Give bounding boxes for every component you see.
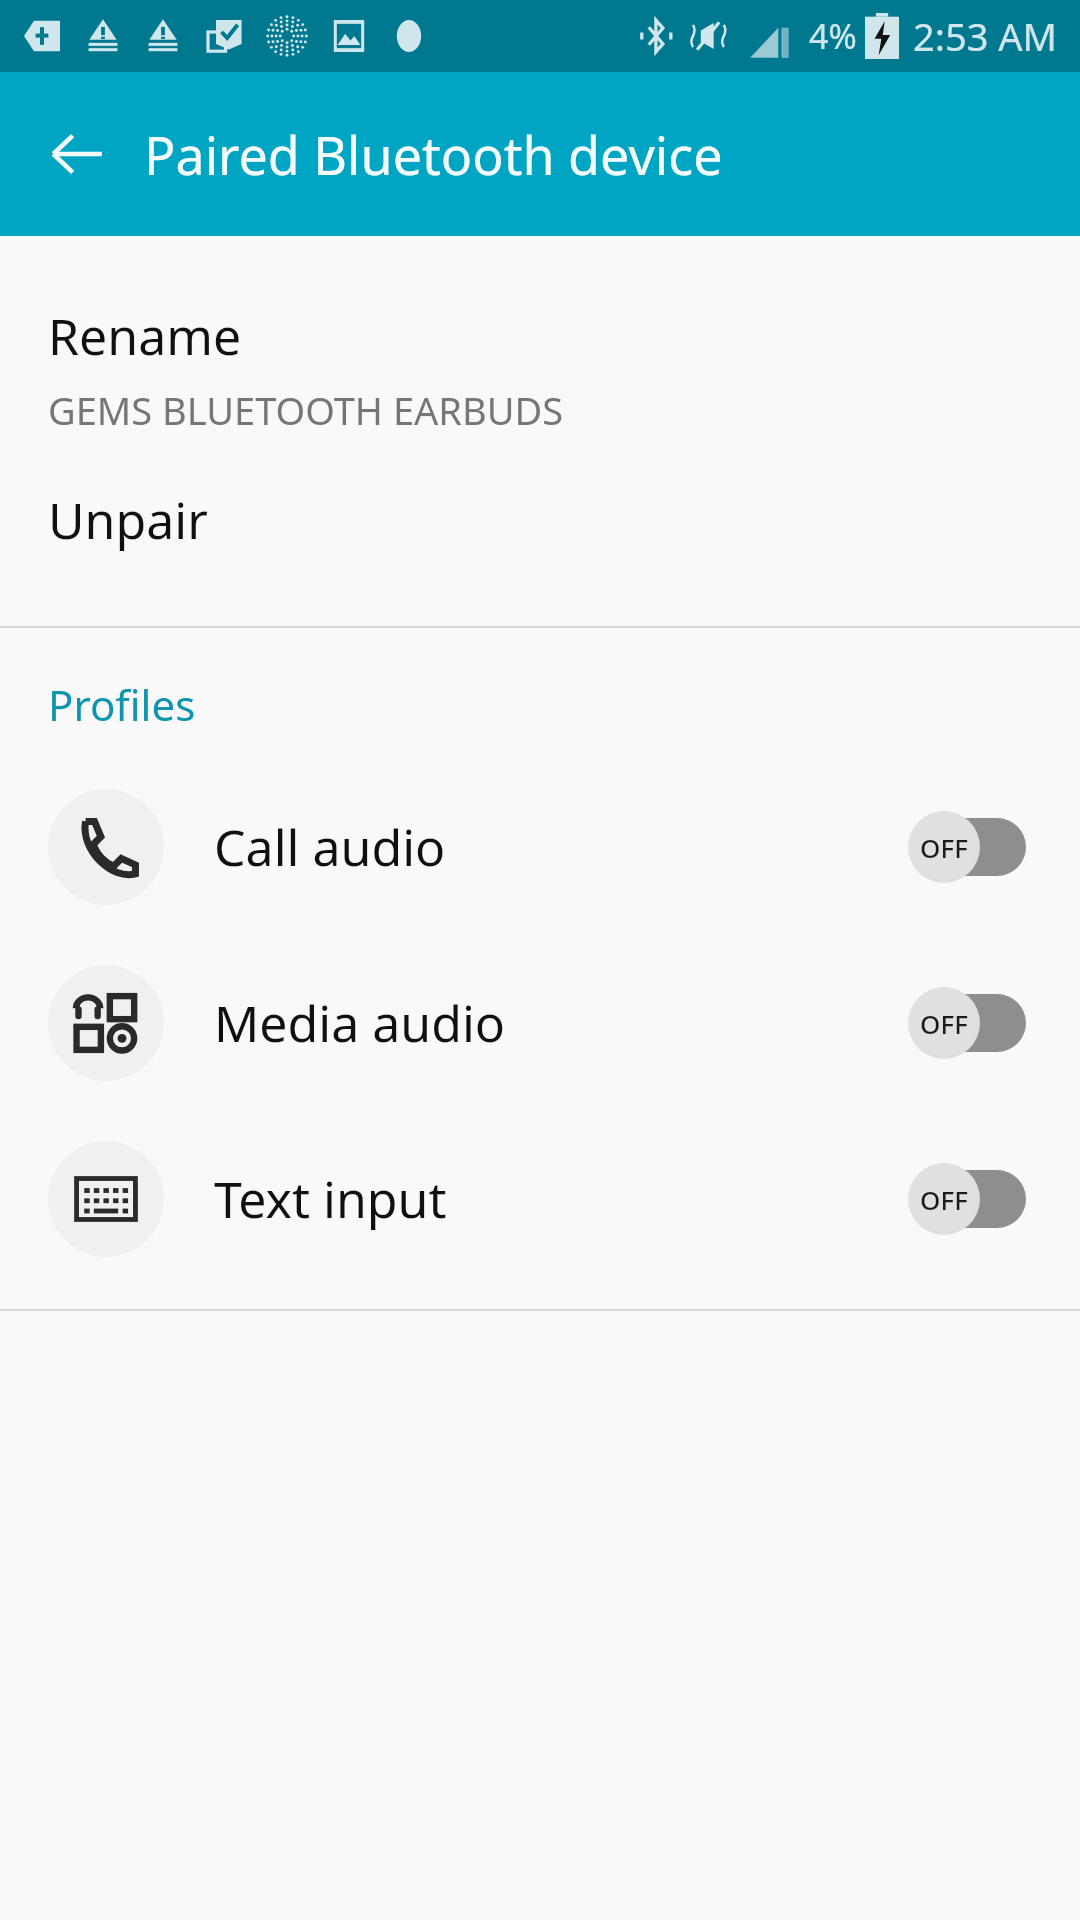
staticText: Unpair <box>48 486 208 554</box>
staticText: Paired Bluetooth device <box>144 119 723 190</box>
button[interactable]: Back <box>34 111 120 197</box>
button[interactable]: Toggle off <box>908 1161 1032 1237</box>
staticText: Text input <box>214 1165 447 1233</box>
staticText: GEMS BLUETOOTH EARBUDS <box>48 384 564 436</box>
staticText: Profiles <box>48 676 196 733</box>
button[interactable]: Call audio <box>0 759 1080 935</box>
button[interactable]: Unpair <box>0 476 1080 564</box>
button[interactable]: Text input <box>0 1111 1080 1287</box>
staticText: 4% <box>809 13 857 59</box>
button[interactable]: Media audio <box>0 935 1080 1111</box>
staticText: 2:53 AM <box>913 10 1058 62</box>
button[interactable]: Toggle off <box>908 809 1032 885</box>
staticText: OFF <box>920 1182 968 1217</box>
staticText: Media audio <box>214 989 506 1057</box>
staticText: Call audio <box>214 813 446 881</box>
button[interactable]: Toggle off <box>908 985 1032 1061</box>
staticText: OFF <box>920 830 968 865</box>
staticText: Rename <box>48 302 242 370</box>
staticText: OFF <box>920 1006 968 1041</box>
button[interactable]: Rename <box>0 296 1080 442</box>
